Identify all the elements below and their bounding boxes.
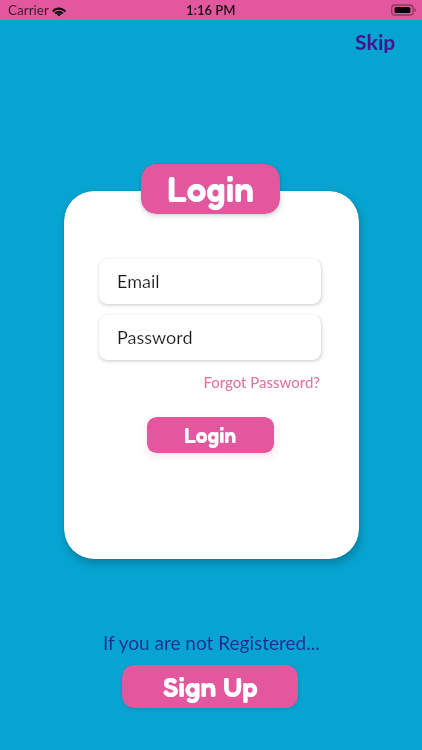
staticText: Sign Up: [163, 670, 258, 704]
button[interactable]: Password: [99, 315, 321, 360]
staticText: 1:16 PM: [186, 2, 236, 18]
button[interactable]: Forgot Password?: [199, 371, 324, 393]
staticText: Login: [167, 168, 254, 210]
button[interactable]: Sign Up: [122, 665, 298, 708]
button[interactable]: Login: [141, 164, 280, 214]
staticText: Carrier: [8, 2, 49, 18]
staticText: Forgot Password?: [203, 373, 320, 391]
staticText: If you are not Registered...: [103, 631, 320, 654]
staticText: Skip: [355, 29, 396, 54]
staticText: Login: [184, 423, 237, 448]
staticText: Email: [117, 270, 160, 292]
staticText: Password: [117, 326, 193, 348]
button[interactable]: Email: [99, 259, 321, 304]
button[interactable]: Skip: [351, 27, 400, 56]
button[interactable]: Login: [147, 417, 274, 453]
